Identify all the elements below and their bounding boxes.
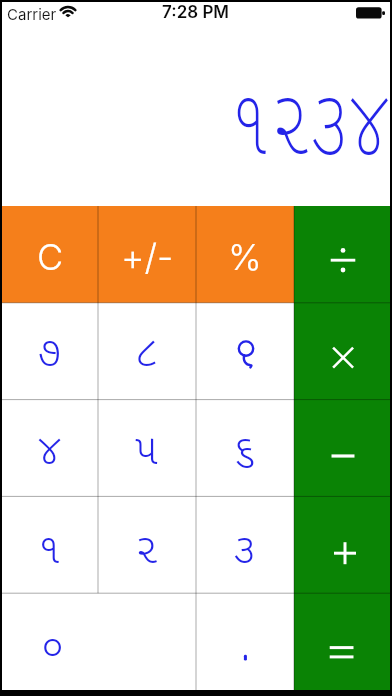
- staticText: +/-: [121, 235, 174, 279]
- button[interactable]: [294, 303, 390, 400]
- button[interactable]: ૮: [98, 303, 196, 400]
- button[interactable]: C: [2, 206, 98, 303]
- staticText: C: [37, 235, 64, 279]
- staticText: %: [228, 235, 262, 279]
- button[interactable]: [294, 400, 390, 497]
- button[interactable]: ૪: [2, 400, 98, 497]
- staticText: Carrier: [7, 5, 57, 23]
- staticText: ૩: [233, 518, 257, 575]
- staticText: ૪: [38, 419, 62, 476]
- button[interactable]: %: [196, 206, 294, 303]
- staticText: ૭: [38, 321, 62, 378]
- button[interactable]: ૧: [2, 496, 98, 593]
- button[interactable]: [101, 593, 196, 690]
- button[interactable]: [294, 496, 390, 593]
- button[interactable]: ૩: [196, 496, 294, 593]
- staticText: ૮: [135, 321, 159, 378]
- button[interactable]: ૫: [98, 400, 196, 497]
- button[interactable]: [294, 593, 390, 690]
- staticText: ૧: [38, 518, 62, 575]
- staticText: ૬: [233, 419, 257, 476]
- button[interactable]: [196, 303, 294, 400]
- button[interactable]: ૬: [196, 400, 294, 497]
- button[interactable]: [294, 206, 390, 303]
- staticText: 7:28 PM: [162, 2, 230, 23]
- staticText: ૫: [135, 419, 159, 476]
- staticText: ૨: [135, 518, 159, 575]
- button[interactable]: ૦: [4, 593, 102, 690]
- button[interactable]: ૭: [2, 303, 98, 400]
- staticText: ૧૨૩૪: [230, 54, 390, 164]
- button[interactable]: [196, 593, 294, 690]
- button[interactable]: +/-: [98, 206, 196, 303]
- button[interactable]: ૨: [98, 496, 196, 593]
- staticText: ૦: [41, 615, 65, 672]
